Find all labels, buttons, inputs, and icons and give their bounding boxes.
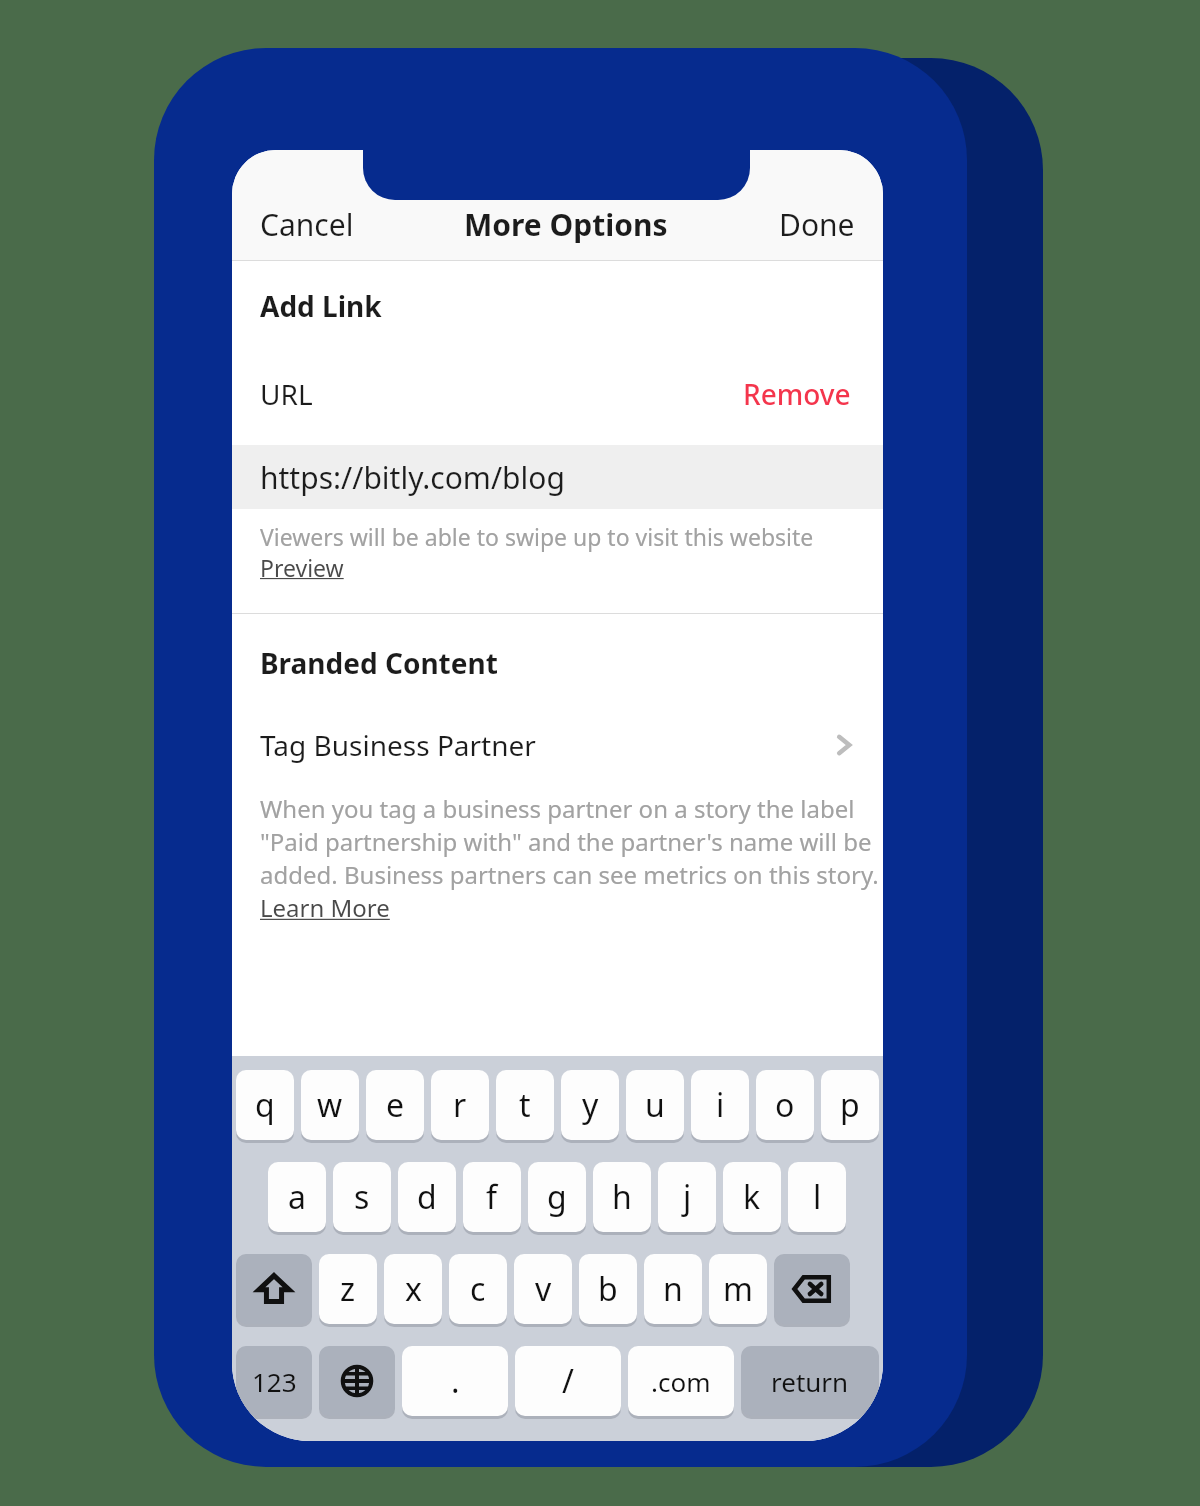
button[interactable]: y [561,1070,619,1144]
button[interactable]: q [236,1070,294,1144]
staticText: Add Link [260,287,382,325]
staticText: Viewers will be able to swipe up to visi… [260,521,814,552]
staticText: i [716,1083,725,1127]
staticText: .com [651,1364,711,1399]
button[interactable]: p [821,1070,879,1144]
button[interactable]: Switch keyboard [319,1346,395,1420]
button[interactable]: / [515,1346,621,1420]
staticText: 123 [252,1364,297,1399]
button[interactable]: h [593,1162,651,1236]
button[interactable]: c [449,1254,507,1328]
staticText: v [535,1267,552,1311]
button[interactable]: d [398,1162,456,1236]
button[interactable]: . [402,1346,508,1420]
button[interactable]: Remove [739,371,855,417]
staticText: return [771,1364,849,1399]
button[interactable]: i [691,1070,749,1144]
staticText: y [582,1083,599,1127]
staticText: d [417,1175,437,1219]
staticText: q [255,1083,275,1127]
button[interactable]: a [268,1162,326,1236]
button[interactable]: x [384,1254,442,1328]
staticText: m [723,1267,753,1311]
staticText: b [598,1267,618,1311]
button[interactable]: Done [775,196,859,253]
button[interactable]: .com [628,1346,734,1420]
staticText: k [743,1175,761,1219]
staticText: More Options [464,204,668,245]
staticText: . [451,1359,460,1403]
button[interactable]: e [366,1070,424,1144]
button[interactable]: g [528,1162,586,1236]
staticText: URL [260,375,313,413]
button[interactable]: l [788,1162,846,1236]
button[interactable]: v [514,1254,572,1328]
staticText: t [519,1083,531,1127]
button[interactable]: 123 [236,1346,312,1420]
staticText: w [317,1083,343,1127]
staticText: x [405,1267,422,1311]
button[interactable]: t [496,1070,554,1144]
button[interactable]: w [301,1070,359,1144]
staticText: l [813,1175,822,1219]
staticText: Cancel [260,204,354,245]
staticText: s [354,1175,370,1219]
button[interactable]: Learn More [260,891,390,924]
button[interactable]: u [626,1070,684,1144]
button[interactable]: Cancel [256,196,358,253]
button[interactable]: m [709,1254,767,1328]
staticText: e [386,1083,405,1127]
button[interactable]: Preview [260,552,344,583]
staticText: Branded Content [260,644,498,682]
staticText: h [612,1175,632,1219]
staticText: j [683,1175,692,1219]
button[interactable]: z [319,1254,377,1328]
button[interactable]: s [333,1162,391,1236]
staticText: a [288,1175,306,1219]
staticText: p [840,1083,860,1127]
staticText: / [562,1359,574,1403]
staticText: Remove [743,375,851,413]
staticText: f [486,1175,498,1219]
button[interactable]: Tag Business Partner [232,726,883,764]
staticText: u [645,1083,665,1127]
staticText: Learn More [260,891,390,924]
staticText: z [340,1267,356,1311]
button[interactable]: Shift [236,1254,312,1328]
staticText: When you tag a business partner on a sto… [260,792,879,891]
button[interactable]: r [431,1070,489,1144]
button[interactable]: n [644,1254,702,1328]
staticText: c [470,1267,486,1311]
button[interactable]: f [463,1162,521,1236]
button[interactable]: o [756,1070,814,1144]
staticText: https://bitly.com/blog [260,457,565,498]
button[interactable]: https://bitly.com/blog [232,445,883,509]
staticText: Done [779,204,855,245]
staticText: Tag Business Partner [260,726,536,764]
staticText: n [663,1267,683,1311]
staticText: r [453,1083,467,1127]
button[interactable]: j [658,1162,716,1236]
button[interactable]: b [579,1254,637,1328]
staticText: o [775,1083,795,1127]
staticText: g [547,1175,567,1219]
button[interactable]: k [723,1162,781,1236]
staticText: Preview [260,552,344,583]
button[interactable]: Backspace [774,1254,850,1328]
button[interactable]: return [741,1346,879,1420]
